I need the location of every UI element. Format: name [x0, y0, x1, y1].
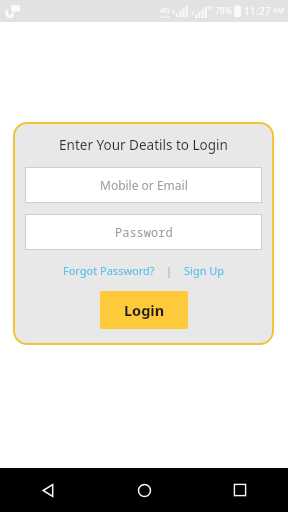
staticText: Mobile or Email [100, 177, 188, 193]
button[interactable]: Mobile or Email [25, 167, 262, 203]
button[interactable]: Recents [192, 468, 288, 512]
staticText: Enter Your Deatils to Login [59, 136, 228, 154]
staticText: Login [124, 300, 165, 320]
staticText: AM [273, 6, 284, 16]
staticText: 2 [191, 9, 195, 17]
button[interactable]: Back [0, 468, 96, 512]
staticText: Sign Up [184, 263, 225, 278]
staticText: Password [115, 224, 173, 240]
button[interactable]: Login [100, 291, 188, 329]
staticText: R [208, 4, 212, 12]
staticText: 11:27 [244, 4, 271, 18]
staticText: Forgot Password? [63, 263, 155, 278]
staticText: 78% [215, 5, 232, 17]
button[interactable]: Home [96, 468, 192, 512]
button[interactable]: Forgot Password? [61, 261, 157, 280]
button[interactable]: Sign Up [182, 261, 227, 280]
staticText: 1 [172, 8, 176, 16]
button[interactable]: Password [25, 214, 262, 250]
staticText: | [166, 263, 173, 278]
staticText: 4G [160, 5, 170, 15]
